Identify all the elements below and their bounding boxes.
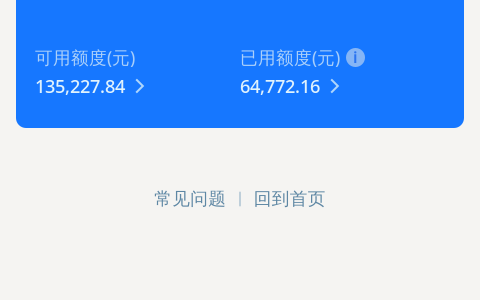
button[interactable]: 64,772.16 (240, 78, 341, 94)
staticText: 135,227.84 (35, 74, 125, 98)
staticText: 可用额度(元) (35, 46, 135, 69)
button[interactable]: 常见问题 (148, 188, 232, 210)
staticText: 已用额度(元) (240, 46, 340, 69)
staticText: 常见问题 (154, 188, 226, 210)
staticText: 64,772.16 (240, 74, 320, 98)
staticText: i (353, 46, 358, 68)
button[interactable]: 已用额度说明 (346, 48, 365, 67)
staticText: 回到首页 (254, 188, 326, 210)
button[interactable]: 回到首页 (248, 188, 332, 210)
button[interactable]: 135,227.84 (35, 78, 146, 94)
